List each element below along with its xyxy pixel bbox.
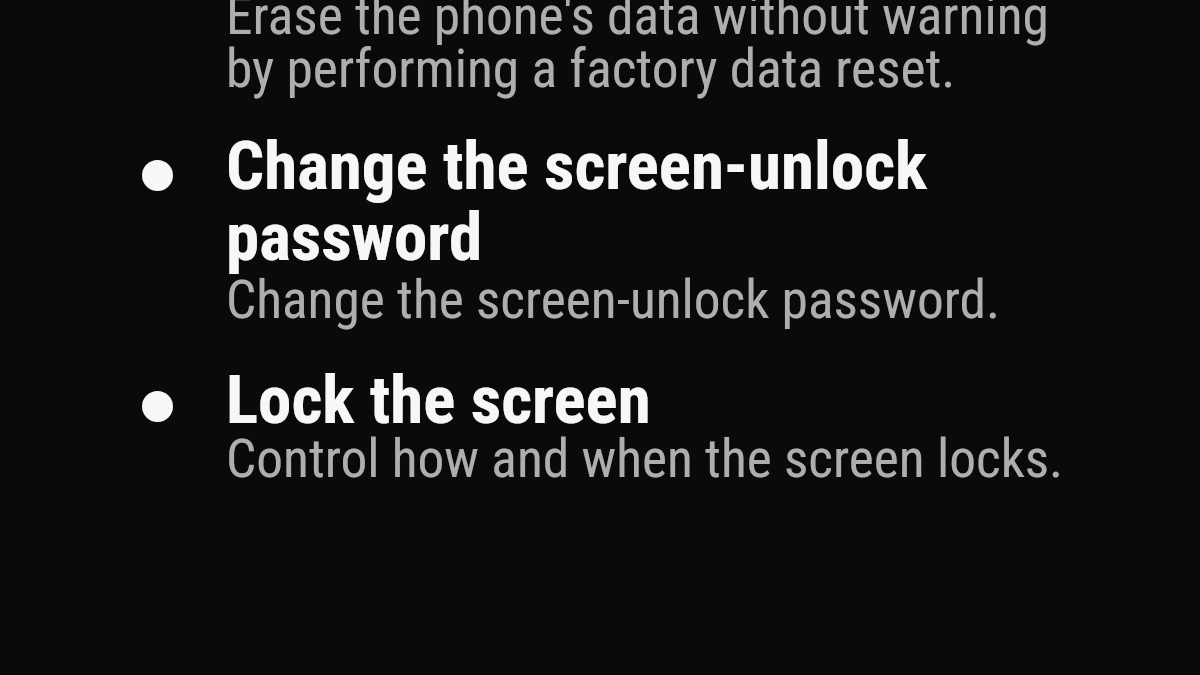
other: Policy bullet — [142, 160, 173, 191]
button[interactable]: Policy bullet — [0, 352, 1200, 497]
staticText: Erase the phone's data without warning b… — [226, 0, 1049, 100]
staticText: Change the screen-unlock password — [226, 133, 928, 275]
button[interactable]: Erase the phone's data without warning b… — [0, 0, 1200, 118]
staticText: Lock the screen — [226, 367, 651, 438]
other: Policy bullet — [142, 391, 173, 422]
staticText: Control how and when the screen locks. — [226, 427, 1064, 490]
staticText: Change the screen-unlock password. — [226, 268, 1001, 331]
button[interactable]: Policy bullet — [0, 119, 1200, 332]
